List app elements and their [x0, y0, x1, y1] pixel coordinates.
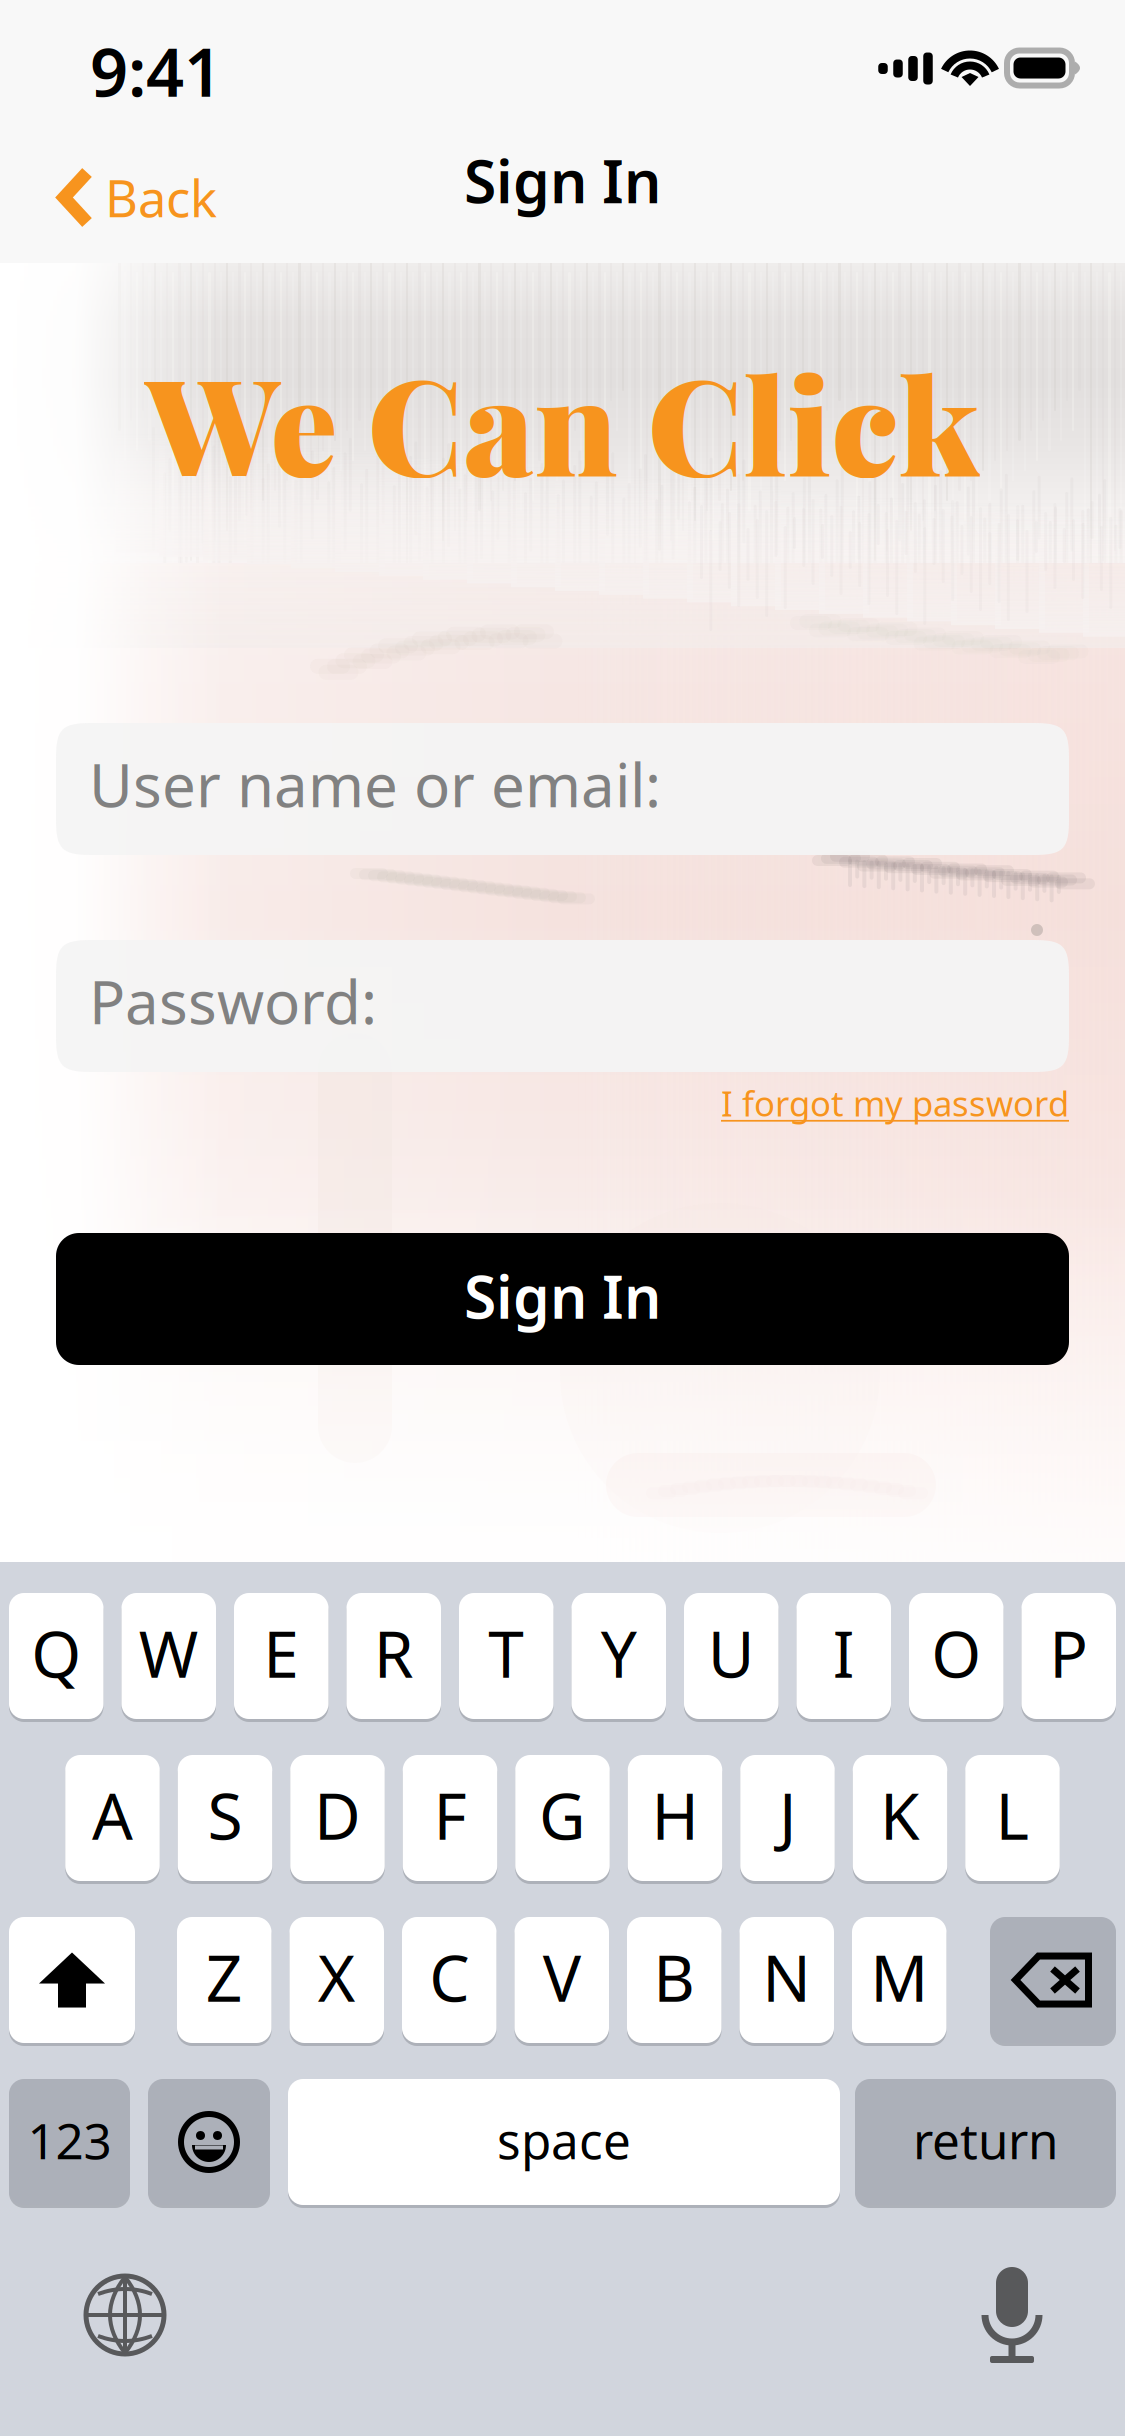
staticText: We Can Click — [145, 332, 979, 510]
staticText: Password: — [89, 961, 377, 1041]
button[interactable]: 123 — [9, 2079, 130, 2208]
button[interactable]: K — [853, 1755, 947, 1884]
button[interactable]: Switch keyboard language — [85, 2275, 165, 2355]
button[interactable]: B — [627, 1917, 721, 2046]
button[interactable]: N — [739, 1917, 834, 2046]
button[interactable]: U — [684, 1593, 778, 1722]
staticText: User name or email: — [89, 744, 661, 824]
button[interactable]: Sign In — [56, 1233, 1069, 1365]
button[interactable]: F — [403, 1755, 497, 1884]
button[interactable]: I forgot my password — [721, 1080, 1069, 1126]
staticText: E — [263, 1610, 299, 1695]
staticText: R — [374, 1610, 414, 1695]
staticText: W — [139, 1610, 199, 1695]
button[interactable]: return — [855, 2079, 1116, 2208]
button[interactable]: L — [965, 1755, 1060, 1884]
staticText: Q — [31, 1610, 81, 1695]
staticText: C — [429, 1934, 469, 2019]
staticText: N — [762, 1934, 811, 2019]
staticText: I forgot my password — [721, 1080, 1069, 1126]
button[interactable]: Y — [571, 1593, 666, 1722]
button[interactable]: P — [1021, 1593, 1116, 1722]
button[interactable]: Delete — [990, 1917, 1116, 2046]
button[interactable]: G — [515, 1755, 610, 1884]
button[interactable]: C — [402, 1917, 496, 2046]
button[interactable]: R — [346, 1593, 441, 1722]
button[interactable]: J — [740, 1755, 835, 1884]
staticText: K — [880, 1772, 920, 1857]
button[interactable]: E — [234, 1593, 328, 1722]
button[interactable]: V — [514, 1917, 609, 2046]
staticText: Back — [105, 164, 217, 231]
staticText: space — [497, 2107, 631, 2173]
staticText: S — [207, 1772, 242, 1857]
staticText: I — [833, 1610, 855, 1695]
button[interactable]: S — [178, 1755, 272, 1884]
staticText: Z — [206, 1934, 243, 2019]
button[interactable]: Z — [177, 1917, 271, 2046]
button[interactable]: W — [121, 1593, 216, 1722]
button[interactable]: H — [628, 1755, 722, 1884]
staticText: L — [995, 1772, 1029, 1857]
staticText: O — [931, 1610, 981, 1695]
staticText: U — [708, 1610, 755, 1695]
staticText: A — [92, 1772, 133, 1857]
button[interactable]: Q — [9, 1593, 103, 1722]
staticText: Sign In — [464, 141, 661, 219]
button[interactable]: D — [290, 1755, 385, 1884]
staticText: V — [543, 1934, 581, 2019]
button[interactable]: Emoji — [148, 2079, 270, 2208]
button[interactable]: X — [289, 1917, 384, 2046]
button[interactable]: M — [852, 1917, 946, 2046]
staticText: F — [433, 1772, 466, 1857]
staticText: Y — [601, 1610, 637, 1695]
button[interactable]: O — [909, 1593, 1003, 1722]
staticText: D — [314, 1772, 361, 1857]
button[interactable]: Dictation — [975, 2267, 1049, 2363]
staticText: Sign In — [464, 1257, 661, 1335]
staticText: return — [913, 2107, 1058, 2173]
button[interactable]: space — [288, 2079, 840, 2208]
staticText: 123 — [27, 2107, 111, 2173]
staticText: T — [488, 1610, 524, 1695]
staticText: 9:41 — [90, 27, 222, 115]
staticText: G — [539, 1772, 586, 1857]
staticText: X — [318, 1934, 356, 2019]
staticText: H — [651, 1772, 698, 1857]
button[interactable]: T — [459, 1593, 553, 1722]
staticText: J — [779, 1772, 796, 1857]
button[interactable]: A — [65, 1755, 160, 1884]
button[interactable]: I — [796, 1593, 891, 1722]
staticText: P — [1049, 1610, 1088, 1695]
button[interactable]: Back — [0, 132, 241, 263]
staticText: M — [870, 1934, 928, 2019]
staticText: B — [653, 1934, 695, 2019]
button[interactable]: Shift — [9, 1917, 135, 2046]
